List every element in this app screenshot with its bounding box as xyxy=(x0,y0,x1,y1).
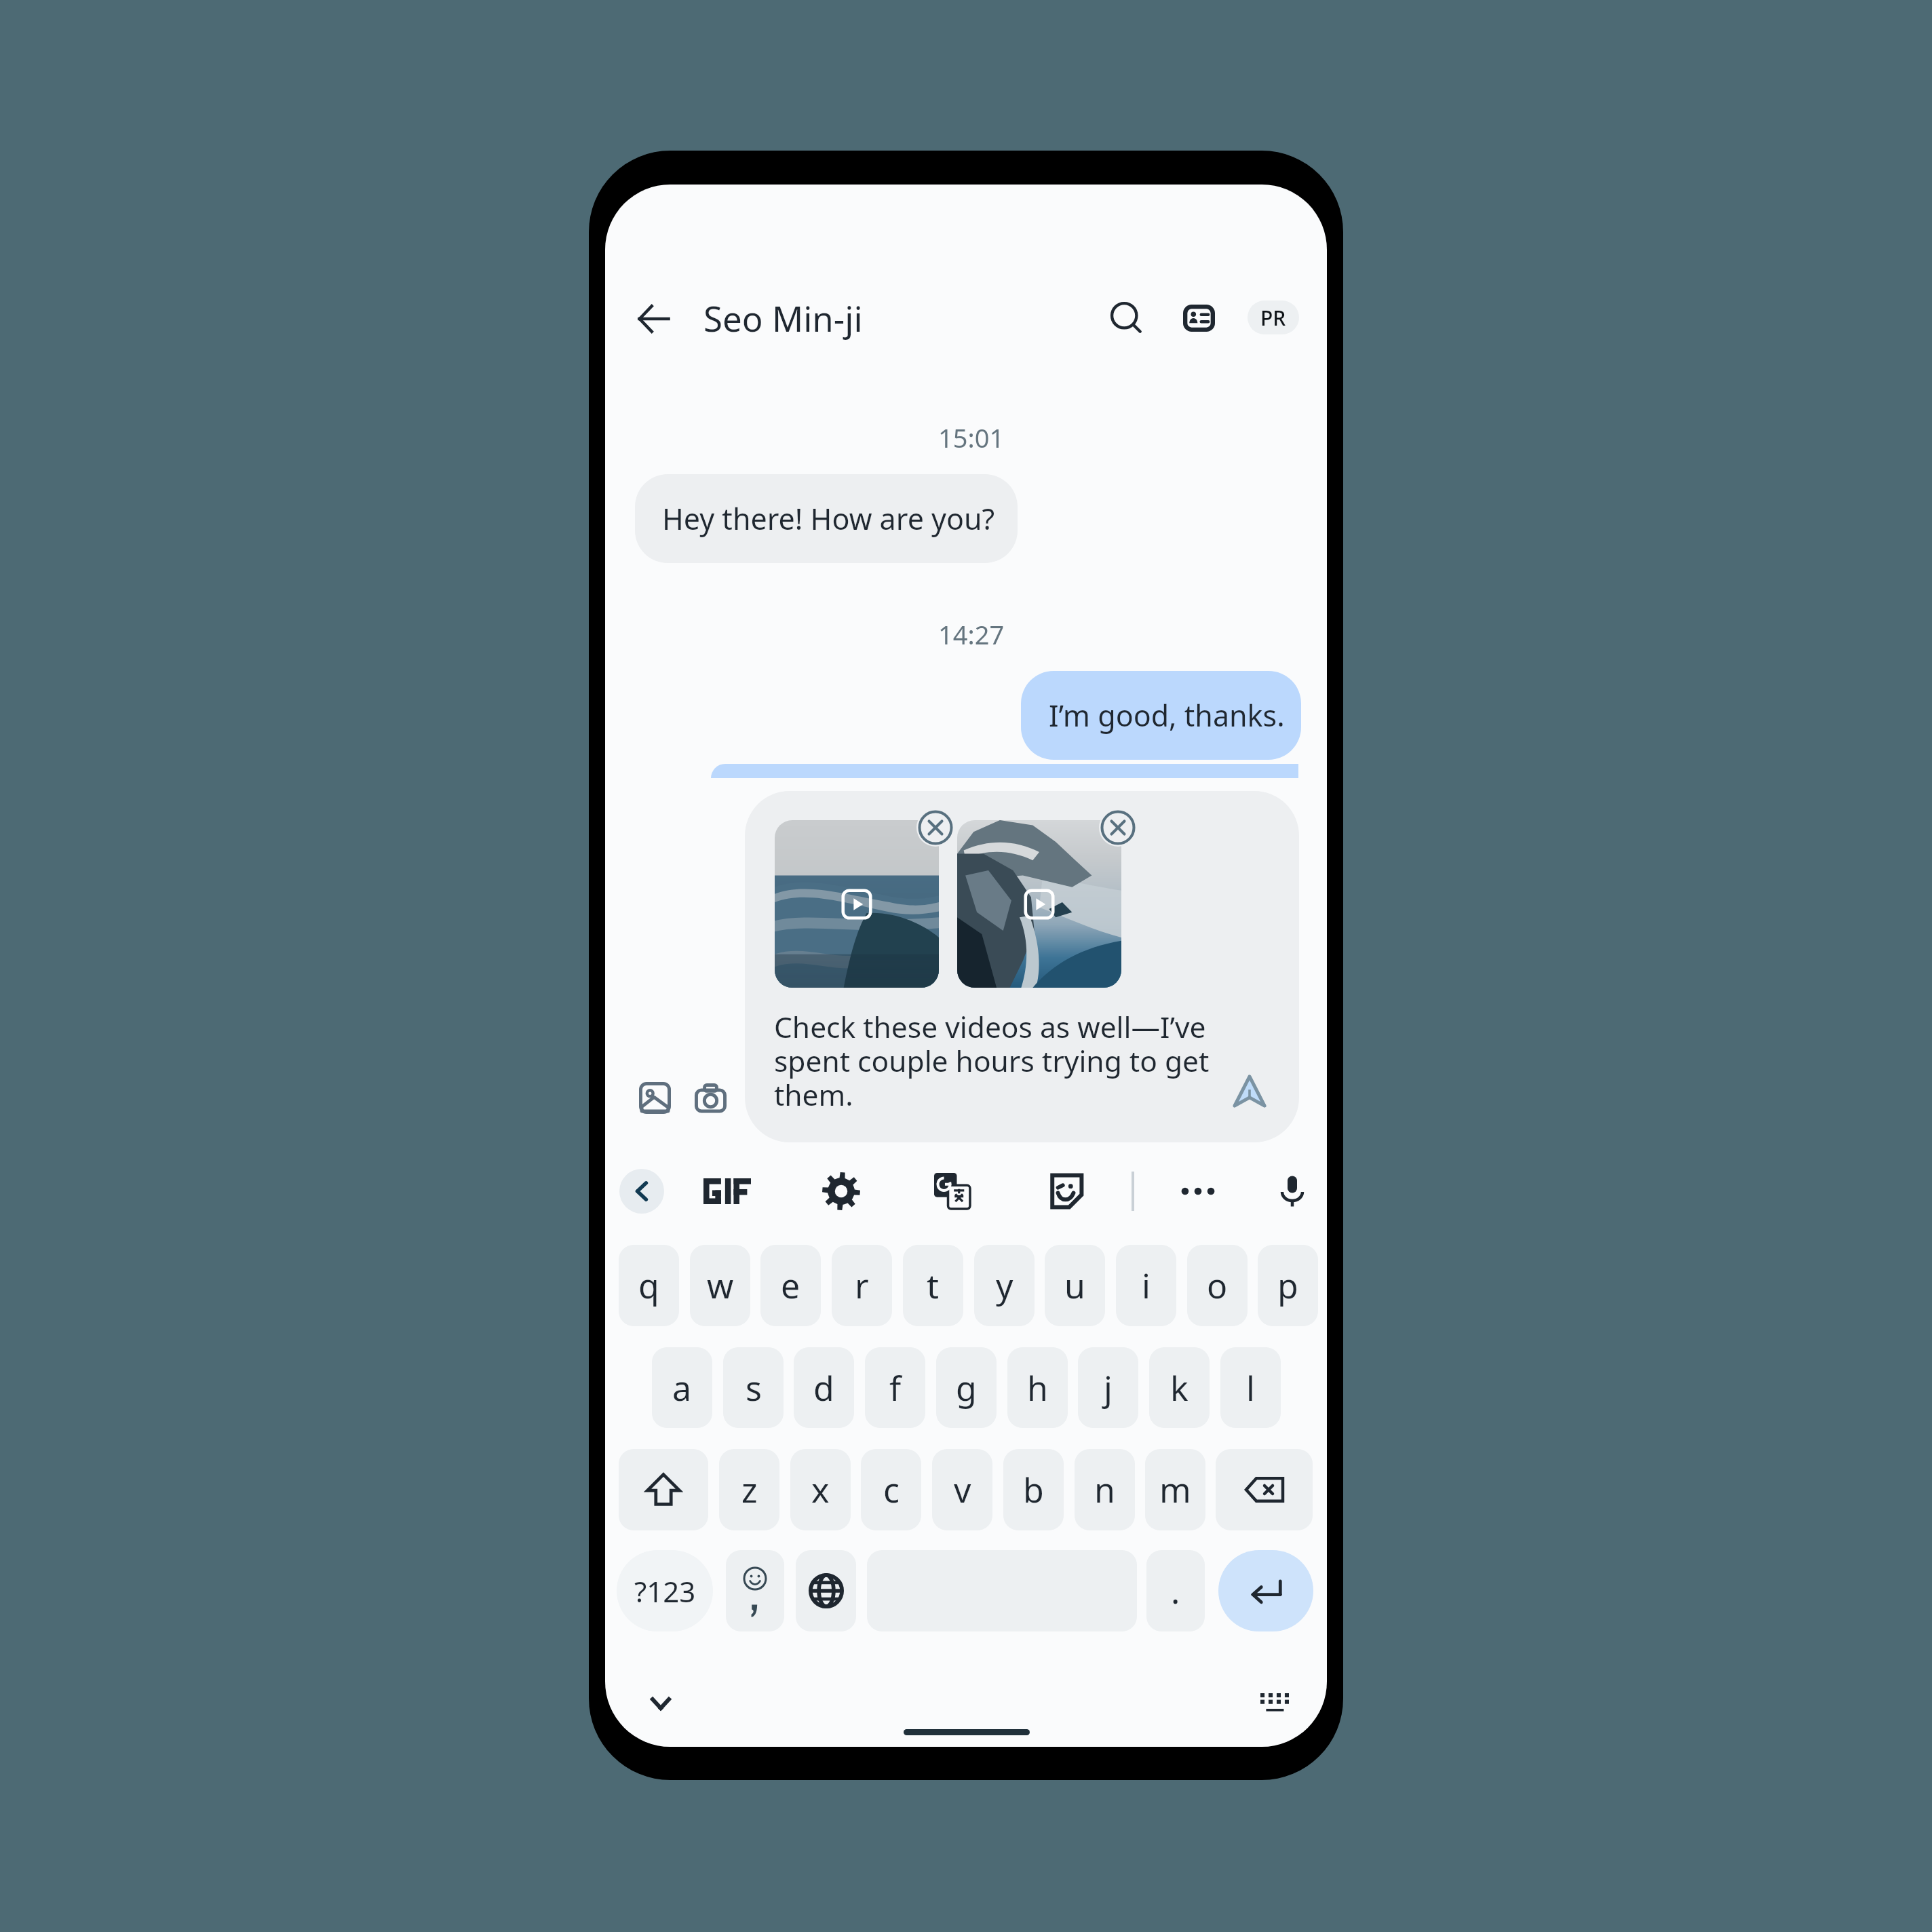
staticText: b xyxy=(1023,1467,1044,1513)
staticText: ?123 xyxy=(634,1572,696,1610)
button[interactable]: Seo Min-ji xyxy=(703,281,907,354)
button[interactable]: Remove xyxy=(1099,809,1137,847)
staticText: Seo Min-ji xyxy=(703,294,863,341)
staticText: I’m good, thanks. xyxy=(1049,695,1285,735)
button[interactable]: Shift xyxy=(619,1449,708,1530)
button[interactable]: f xyxy=(865,1347,925,1428)
button[interactable]: a xyxy=(652,1347,712,1428)
staticText: d xyxy=(813,1365,834,1411)
button[interactable]: Enter xyxy=(1218,1550,1313,1631)
button[interactable]: w xyxy=(690,1245,750,1326)
button[interactable]: y xyxy=(974,1245,1035,1326)
button[interactable] xyxy=(711,764,1298,778)
staticText: j xyxy=(1104,1365,1113,1411)
button[interactable]: g xyxy=(936,1347,997,1428)
button[interactable]: Translate xyxy=(917,1156,988,1226)
button[interactable]: u xyxy=(1045,1245,1105,1326)
staticText: u xyxy=(1064,1262,1085,1309)
button[interactable]: h xyxy=(1007,1347,1068,1428)
button[interactable]: s xyxy=(723,1347,784,1428)
staticText: q xyxy=(638,1262,659,1309)
button[interactable]: Remove xyxy=(745,791,1299,1142)
staticText: h xyxy=(1027,1365,1048,1411)
staticText: PR xyxy=(1260,304,1286,332)
button[interactable]: Collapse toolbar xyxy=(619,1169,664,1214)
staticText: a xyxy=(672,1365,692,1411)
button[interactable]: l xyxy=(1220,1347,1281,1428)
button[interactable]: Hey there! How are you? xyxy=(635,474,1018,563)
staticText: t xyxy=(927,1262,940,1309)
button[interactable]: ?123 xyxy=(617,1550,713,1631)
staticText: x xyxy=(811,1467,830,1513)
staticText: z xyxy=(741,1467,758,1513)
button[interactable] xyxy=(775,820,939,988)
staticText: f xyxy=(889,1365,902,1411)
button[interactable]: c xyxy=(861,1449,921,1530)
staticText: g xyxy=(956,1365,977,1411)
button[interactable]: j xyxy=(1078,1347,1138,1428)
button[interactable]: Hide keyboard xyxy=(630,1673,691,1734)
button[interactable]: Keyboard layout xyxy=(1244,1672,1305,1733)
staticText: i xyxy=(1142,1262,1151,1309)
button[interactable]: Contact info xyxy=(1165,284,1233,352)
staticText: s xyxy=(746,1365,762,1411)
staticText: y xyxy=(996,1262,1013,1309)
button[interactable]: PR xyxy=(1248,301,1299,334)
staticText: w xyxy=(707,1262,734,1309)
button[interactable]: I’m good, thanks. xyxy=(1021,671,1301,760)
button[interactable]: Gallery xyxy=(624,1067,685,1128)
button[interactable]: p xyxy=(1258,1245,1318,1326)
staticText: c xyxy=(883,1467,900,1513)
button[interactable]: Stickers xyxy=(1030,1156,1101,1226)
staticText: r xyxy=(855,1262,869,1309)
staticText: k xyxy=(1170,1365,1189,1411)
button[interactable]: . xyxy=(1146,1550,1205,1631)
button[interactable]: Camera xyxy=(680,1067,741,1128)
button[interactable]: Settings xyxy=(806,1156,876,1226)
button[interactable]: q xyxy=(619,1245,679,1326)
button[interactable]: Emoji xyxy=(726,1550,784,1631)
button[interactable]: Backspace xyxy=(1216,1449,1313,1530)
staticText: o xyxy=(1207,1262,1228,1309)
button[interactable]: Remove xyxy=(916,809,954,847)
button[interactable]: z xyxy=(719,1449,779,1530)
button[interactable]: d xyxy=(794,1347,854,1428)
button[interactable]: GIF xyxy=(692,1156,762,1226)
button[interactable]: v xyxy=(932,1449,992,1530)
button[interactable]: Search xyxy=(1092,284,1160,351)
button[interactable] xyxy=(957,820,1121,988)
staticText: p xyxy=(1277,1262,1298,1309)
staticText: . xyxy=(1171,1568,1180,1614)
button[interactable]: i xyxy=(1116,1245,1176,1326)
staticText: n xyxy=(1094,1467,1115,1513)
button[interactable]: t xyxy=(903,1245,963,1326)
staticText: e xyxy=(781,1262,800,1309)
staticText: v xyxy=(954,1467,971,1513)
button[interactable]: b xyxy=(1003,1449,1064,1530)
button[interactable]: Voice input xyxy=(1257,1156,1327,1226)
staticText: l xyxy=(1246,1365,1255,1411)
button[interactable]: n xyxy=(1075,1449,1135,1530)
staticText: Hey there! How are you? xyxy=(662,499,995,539)
button[interactable]: m xyxy=(1145,1449,1205,1530)
staticText: m xyxy=(1159,1467,1191,1513)
button[interactable]: x xyxy=(790,1449,851,1530)
button[interactable]: o xyxy=(1187,1245,1248,1326)
staticText: 14:27 xyxy=(938,617,1005,652)
button[interactable]: Back xyxy=(620,285,688,353)
button[interactable]: Send xyxy=(1219,1060,1280,1121)
button[interactable]: More options xyxy=(1163,1156,1233,1226)
button[interactable]: k xyxy=(1149,1347,1210,1428)
button[interactable]: r xyxy=(832,1245,892,1326)
button[interactable]: Change language xyxy=(796,1550,856,1631)
staticText: Check these videos as well—I’ve spent co… xyxy=(774,1007,1222,1115)
button[interactable]: e xyxy=(760,1245,821,1326)
staticText: 15:01 xyxy=(938,420,1005,455)
